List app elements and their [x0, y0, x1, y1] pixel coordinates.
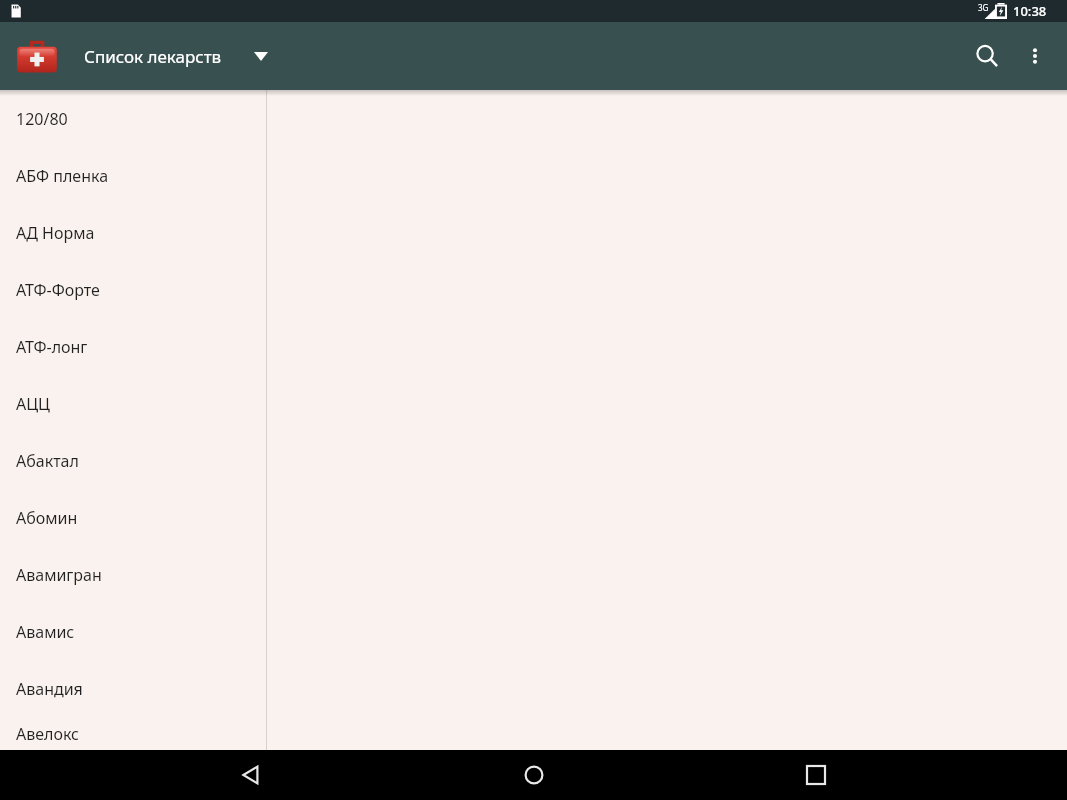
staticText: АЦЦ [16, 393, 50, 415]
staticText: Абомин [16, 507, 78, 529]
staticText: Абактал [16, 450, 79, 472]
staticText: АТФ-Форте [16, 279, 100, 301]
button[interactable]: АД Норма [0, 204, 266, 261]
button[interactable]: More options [1011, 32, 1059, 80]
button[interactable]: Авандия [0, 660, 266, 717]
button[interactable]: АЦЦ [0, 375, 266, 432]
button[interactable]: Абактал [0, 432, 266, 489]
button[interactable]: Back [219, 750, 283, 800]
staticText: Авамис [16, 621, 75, 643]
staticText: Список лекарств [84, 45, 222, 68]
staticText: 3G [978, 2, 989, 13]
button[interactable]: Search [963, 32, 1011, 80]
button[interactable]: Авелокс [0, 717, 266, 750]
button[interactable]: Список лекарств [80, 37, 272, 76]
button[interactable]: Авамигран [0, 546, 266, 603]
button[interactable]: Home [502, 750, 566, 800]
button[interactable]: Абомин [0, 489, 266, 546]
staticText: Авандия [16, 678, 83, 700]
button[interactable]: Авамис [0, 603, 266, 660]
button[interactable]: АТФ-лонг [0, 318, 266, 375]
button[interactable]: АТФ-Форте [0, 261, 266, 318]
button[interactable]: 120/80 [0, 90, 266, 147]
staticText: АТФ-лонг [16, 336, 88, 358]
button[interactable]: Recent apps [784, 750, 848, 800]
staticText: Авелокс [16, 723, 80, 745]
staticText: Авамигран [16, 564, 102, 586]
staticText: 10:38 [1013, 2, 1047, 20]
staticText: АБФ пленка [16, 165, 109, 187]
button[interactable]: АБФ пленка [0, 147, 266, 204]
staticText: 120/80 [16, 108, 68, 130]
staticText: АД Норма [16, 222, 95, 244]
